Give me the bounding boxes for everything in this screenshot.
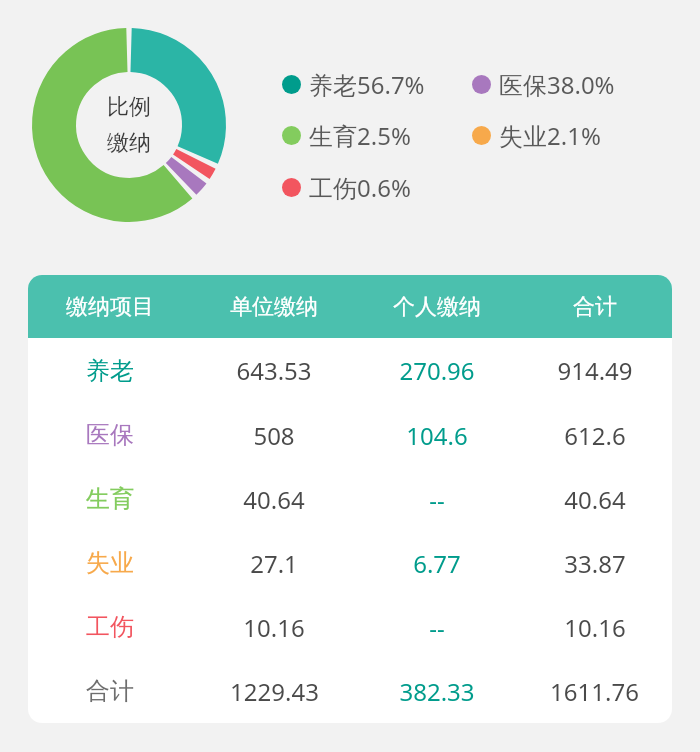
staticText: 缴纳项目 — [66, 293, 154, 321]
staticText: 工伤 — [86, 612, 134, 642]
staticText: 40.64 — [564, 483, 626, 516]
staticText: 比例 — [107, 93, 151, 121]
staticText: 10.16 — [243, 611, 305, 644]
staticText: 40.64 — [243, 483, 305, 516]
staticText: 508 — [253, 419, 295, 452]
button[interactable]: 缴纳比例环形图 — [26, 22, 232, 228]
staticText: 6.77 — [413, 547, 461, 580]
staticText: 个人缴纳 — [393, 293, 481, 321]
staticText: 失业2.1% — [499, 119, 601, 152]
staticText: 612.6 — [564, 419, 626, 452]
button[interactable]: 生育 — [28, 467, 672, 531]
staticText: 270.96 — [399, 354, 475, 387]
staticText: 382.33 — [399, 675, 475, 708]
button[interactable]: 医保38.0% — [472, 66, 615, 102]
staticText: 医保 — [86, 420, 134, 450]
staticText: 缴纳 — [107, 129, 151, 157]
button[interactable]: 工伤0.6% — [282, 169, 411, 205]
staticText: -- — [429, 611, 445, 644]
staticText: -- — [429, 483, 445, 516]
staticText: 养老 — [86, 356, 134, 386]
staticText: 914.49 — [557, 354, 633, 387]
button[interactable]: 缴纳项目 — [28, 275, 672, 338]
button[interactable]: 医保 — [28, 403, 672, 467]
staticText: 医保38.0% — [499, 68, 615, 101]
button[interactable]: 养老56.7% — [282, 66, 425, 102]
staticText: 1229.43 — [230, 675, 319, 708]
staticText: 合计 — [573, 293, 617, 321]
staticText: 1611.76 — [550, 675, 639, 708]
staticText: 工伤0.6% — [309, 171, 411, 204]
staticText: 合计 — [86, 676, 134, 706]
staticText: 27.1 — [250, 547, 298, 580]
button[interactable]: 养老 — [28, 338, 672, 403]
button[interactable]: 失业 — [28, 531, 672, 595]
staticText: 失业 — [86, 548, 134, 578]
button[interactable]: 工伤 — [28, 595, 672, 659]
button[interactable]: 生育2.5% — [282, 117, 411, 153]
button[interactable]: 失业2.1% — [472, 117, 601, 153]
button[interactable]: 合计 — [28, 659, 672, 723]
staticText: 643.53 — [236, 354, 312, 387]
staticText: 生育2.5% — [309, 119, 411, 152]
staticText: 生育 — [86, 484, 134, 514]
staticText: 104.6 — [406, 419, 468, 452]
staticText: 10.16 — [564, 611, 626, 644]
staticText: 单位缴纳 — [230, 293, 318, 321]
staticText: 养老56.7% — [309, 68, 425, 101]
staticText: 33.87 — [564, 547, 626, 580]
